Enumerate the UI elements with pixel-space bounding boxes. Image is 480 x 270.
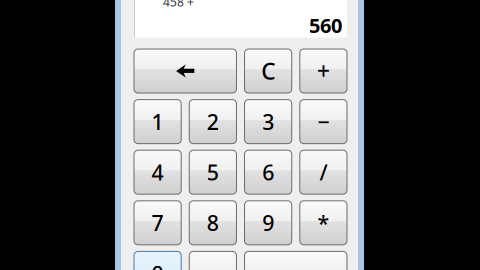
staticText: 0 (152, 259, 164, 270)
button[interactable]: 2 (189, 100, 236, 144)
staticText: − (317, 107, 329, 136)
staticText: 7 (152, 209, 164, 237)
staticText: * (317, 209, 329, 237)
staticText: + (317, 56, 330, 86)
staticText: C (261, 56, 275, 86)
staticText: 1 (152, 107, 164, 136)
button[interactable]: 5 (189, 150, 236, 194)
staticText: 3 (262, 107, 274, 136)
button[interactable]: 3 (244, 100, 292, 144)
button[interactable]: 4 (134, 150, 181, 194)
button[interactable]: = (244, 251, 347, 270)
button[interactable]: / (300, 150, 347, 194)
staticText: 8 (207, 209, 219, 237)
button[interactable]: + (300, 49, 347, 93)
button[interactable]: C (244, 49, 292, 93)
staticText: 2 (207, 107, 219, 136)
staticText: 458 + (163, 0, 194, 10)
button[interactable]: 7 (134, 201, 181, 245)
staticText: 9 (262, 209, 274, 237)
button[interactable]: . (189, 251, 236, 270)
staticText: 560 (309, 12, 342, 38)
button[interactable]: Backspace (134, 49, 236, 93)
button[interactable]: * (300, 201, 347, 245)
button[interactable]: 1 (134, 100, 181, 144)
staticText: / (319, 158, 327, 186)
staticText: 5 (207, 158, 219, 186)
staticText: 6 (262, 158, 274, 186)
button[interactable]: 0 (134, 251, 181, 270)
button[interactable]: 6 (244, 150, 292, 194)
staticText: 4 (152, 158, 164, 186)
button[interactable]: − (300, 100, 347, 144)
button[interactable]: 9 (244, 201, 292, 245)
button[interactable]: 8 (189, 201, 236, 245)
